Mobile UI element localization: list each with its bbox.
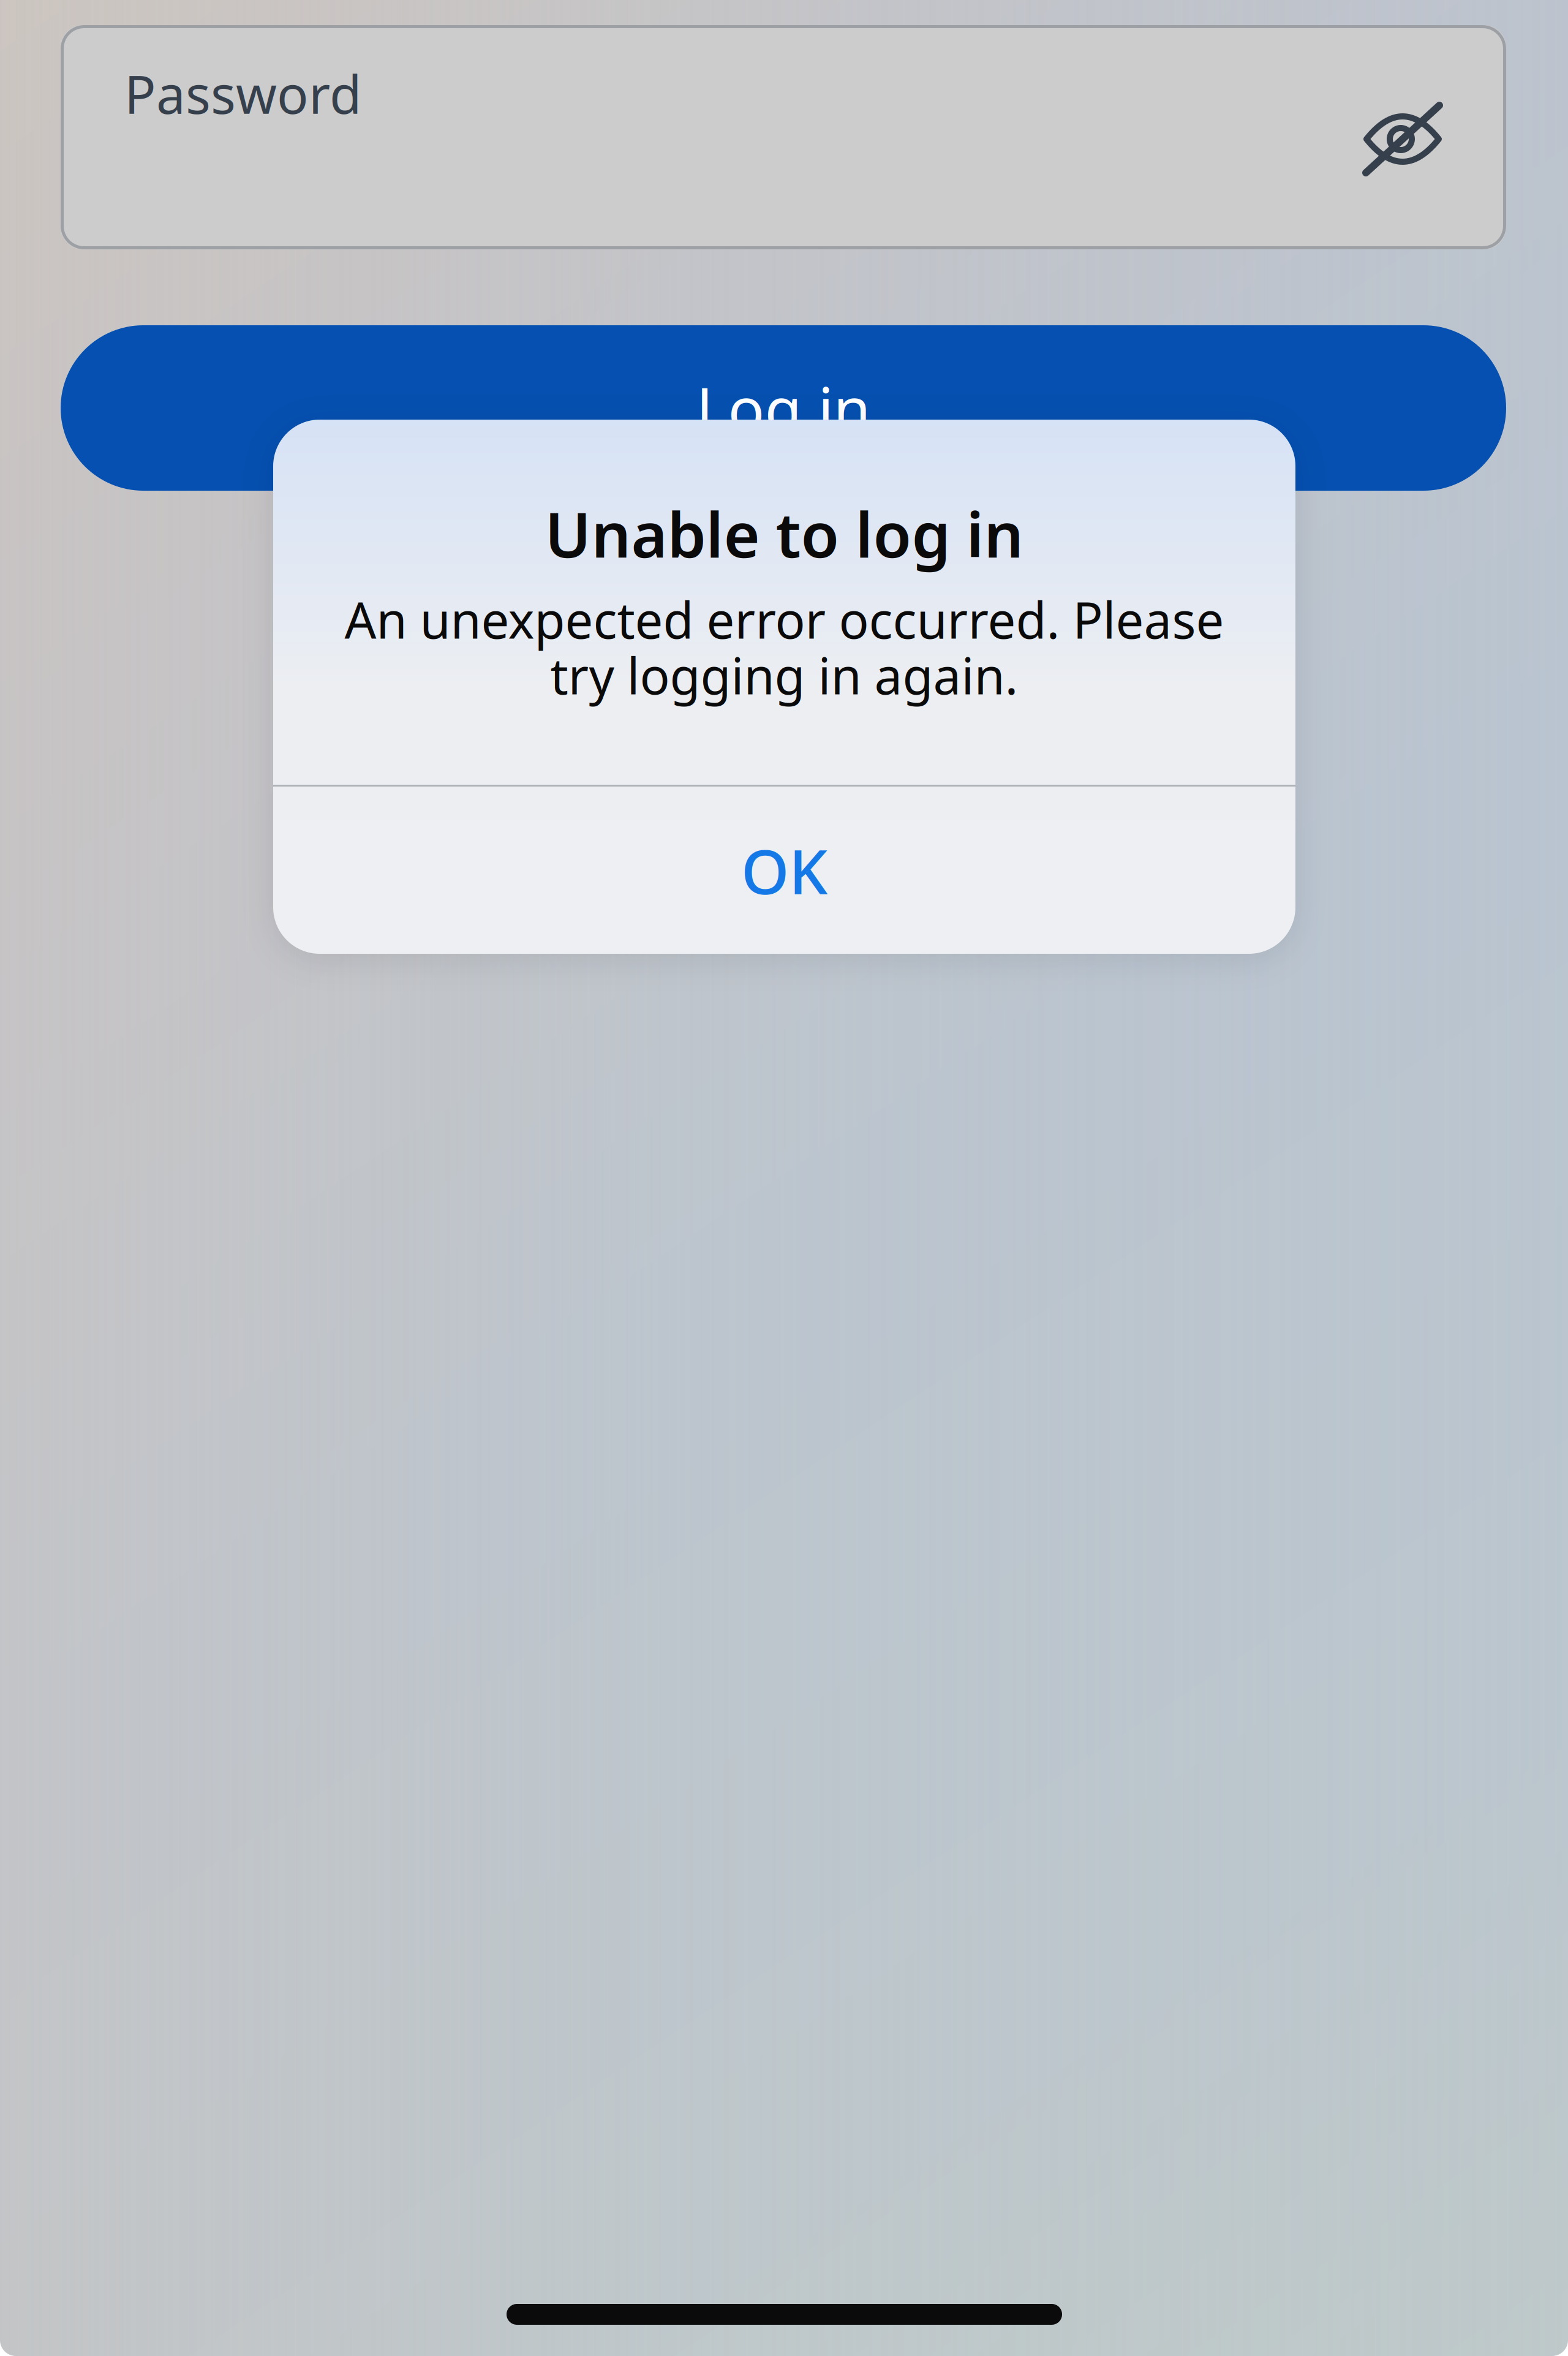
button[interactable]: Show password <box>1326 62 1479 216</box>
staticText: Unable to log in <box>545 492 1024 575</box>
staticText: OK <box>741 830 827 911</box>
staticText: Log in <box>696 368 871 448</box>
button[interactable]: Log in <box>61 325 1506 491</box>
button[interactable]: OK <box>273 787 1295 954</box>
staticText: An unexpected error occurred. Please <box>345 586 1224 652</box>
staticText: Password <box>124 59 361 128</box>
button[interactable]: Password <box>61 25 1506 249</box>
staticText: try logging in again. <box>550 642 1018 708</box>
